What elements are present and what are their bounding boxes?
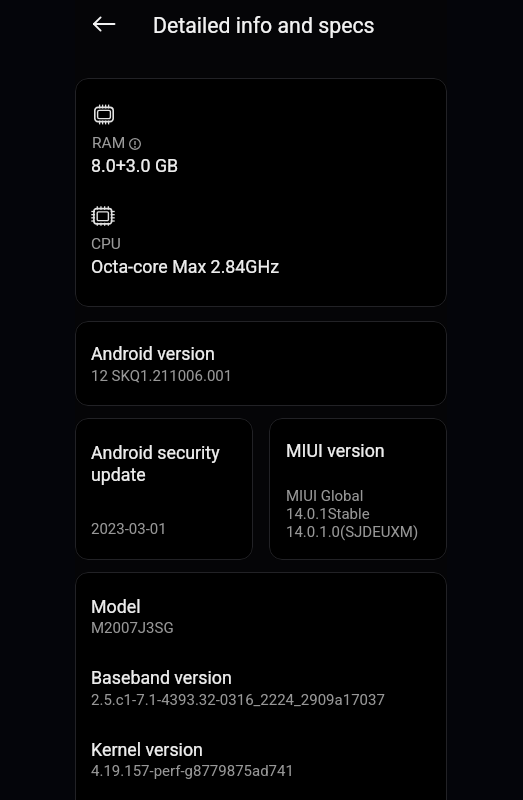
staticText: M2007J3SG [91,619,174,637]
staticText: Android version [91,343,215,364]
button[interactable]: Back [87,7,121,41]
staticText: Detailed info and specs [153,13,375,38]
button[interactable] [75,418,253,560]
staticText: Android security update [91,442,220,486]
staticText: Octa-core Max 2.84GHz [91,256,279,277]
staticText: 2.5.c1-7.1-4393.32-0316_2224_2909a17037 [91,691,385,709]
staticText: Baseband version [91,667,232,688]
button[interactable] [269,418,447,560]
staticText: MIUI version [286,440,385,461]
staticText: 4.19.157-perf-g8779875ad741 [91,762,294,780]
button[interactable] [75,321,447,406]
staticText: MIUI Global 14.0.1Stable 14.0.1.0(SJDEUX… [286,487,419,541]
staticText: CPU [91,235,121,253]
button[interactable] [75,78,447,307]
staticText: Model [91,596,141,617]
button[interactable] [75,572,447,800]
staticText: Kernel version [91,739,203,760]
staticText: 8.0+3.0 GB [91,155,179,176]
staticText: 2023-03-01 [91,520,167,538]
staticText: RAM [92,134,126,152]
staticText: 12 SKQ1.211006.001 [91,367,233,385]
